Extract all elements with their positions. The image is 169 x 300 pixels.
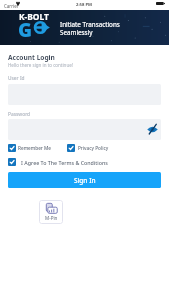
other: Wi-Fi bbox=[16, 2, 20, 6]
staticText: Sign In bbox=[74, 176, 96, 185]
staticText: Privacy Policy bbox=[78, 145, 109, 151]
staticText: Account Login bbox=[8, 53, 55, 62]
staticText: Hello there sign in to continue! bbox=[8, 62, 73, 68]
button[interactable]: Privacy Policy bbox=[67, 144, 109, 152]
staticText: G bbox=[18, 17, 33, 37]
staticText: M-Pin bbox=[45, 215, 58, 221]
button[interactable]: Sign In bbox=[8, 172, 161, 188]
staticText: Initiate Transactions bbox=[60, 20, 120, 29]
button[interactable]: M-Pin bbox=[39, 200, 63, 224]
button[interactable]: Remember Me bbox=[8, 144, 52, 152]
button[interactable]: Show password bbox=[147, 124, 158, 135]
staticText: 2:58 PM bbox=[76, 2, 93, 8]
staticText: Seamlessly bbox=[60, 28, 93, 37]
button[interactable]: I Agree To The Terms & Conditions bbox=[8, 158, 108, 166]
staticText: Password bbox=[8, 111, 31, 118]
button[interactable]: Show password bbox=[8, 119, 161, 140]
staticText: I Agree To The Terms & Conditions bbox=[21, 159, 108, 166]
staticText: Remember Me bbox=[18, 145, 52, 151]
staticText: User Id bbox=[8, 75, 25, 82]
staticText: K-BOLT bbox=[19, 11, 49, 22]
staticText: Carrier bbox=[4, 3, 19, 9]
